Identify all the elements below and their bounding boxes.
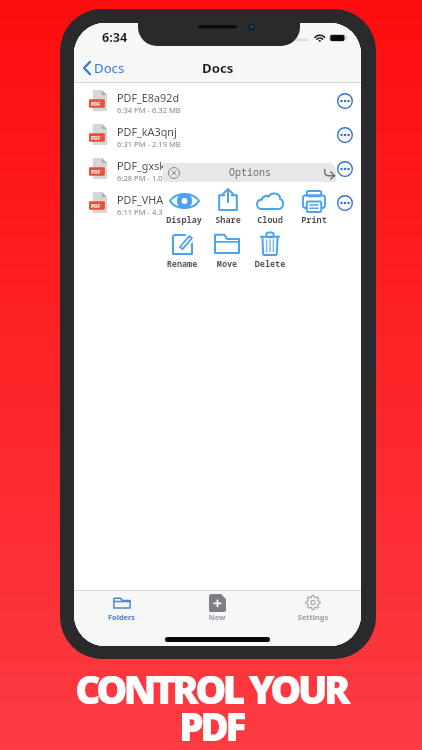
staticText: 6:34 PM - 6.32 MB: [117, 105, 181, 115]
button[interactable]: PDF: [74, 83, 361, 117]
button[interactable]: Display: [162, 191, 206, 226]
staticText: 6:11 PM - 4.31 MB: [117, 207, 181, 217]
button[interactable]: Settings: [265, 590, 361, 646]
button[interactable]: Docs: [79, 54, 129, 82]
button[interactable]: Share: [206, 188, 250, 226]
button[interactable]: Move: [205, 233, 249, 270]
button[interactable]: PDF: [74, 185, 361, 219]
staticText: Settings: [265, 612, 361, 622]
staticText: PDF_E8a92d: [117, 90, 180, 105]
staticText: Cloud: [248, 214, 292, 226]
button[interactable]: PDF: [74, 151, 361, 185]
staticText: Rename: [160, 258, 204, 270]
staticText: Share: [206, 214, 250, 226]
button[interactable]: Folders: [74, 590, 169, 646]
button[interactable]: More options: [333, 89, 357, 113]
staticText: Print: [292, 214, 336, 226]
staticText: PDF: [91, 169, 101, 176]
button[interactable]: Print: [292, 190, 336, 226]
staticText: Move: [205, 258, 249, 270]
button[interactable]: More options: [333, 157, 357, 181]
staticText: PDF_kA3qnj: [117, 124, 177, 139]
staticText: CONTROL YOUR PDF: [0, 662, 422, 750]
button[interactable]: Delete: [248, 232, 292, 270]
staticText: New: [169, 612, 265, 622]
staticText: 6:34: [102, 29, 128, 46]
staticText: Docs: [94, 59, 125, 77]
staticText: 6:31 PM - 2.19 MB: [117, 139, 181, 149]
staticText: PDF_gxskvq: [117, 158, 178, 173]
staticText: Delete: [248, 258, 292, 270]
button[interactable]: Forward: [324, 169, 335, 179]
button[interactable]: Cloud: [248, 191, 292, 226]
button[interactable]: Close: [168, 167, 180, 179]
staticText: PDF_VHAlqz: [117, 192, 178, 207]
staticText: PDF: [91, 101, 101, 108]
button[interactable]: Rename: [160, 234, 204, 270]
staticText: Display: [162, 214, 206, 226]
staticText: PDF: [91, 203, 101, 210]
button[interactable]: PDF: [74, 117, 361, 151]
staticText: Folders: [74, 612, 169, 622]
button[interactable]: New: [169, 590, 265, 646]
staticText: 6:28 PM - 1.04 MB: [117, 173, 181, 183]
staticText: Options: [229, 165, 271, 179]
button[interactable]: More options: [333, 123, 357, 147]
button[interactable]: More options: [333, 191, 357, 215]
staticText: Docs: [202, 59, 234, 77]
staticText: PDF: [91, 135, 101, 142]
